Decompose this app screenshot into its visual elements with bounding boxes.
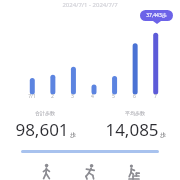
button[interactable]: 37,443歩 — [140, 10, 173, 24]
staticText: 3 — [71, 93, 74, 100]
staticText: 4 — [91, 93, 94, 100]
button[interactable]: Running — [77, 159, 103, 180]
staticText: 98,601 — [15, 118, 69, 141]
button[interactable]: 7/1 — [0, 0, 180, 104]
staticText: 歩 — [70, 131, 76, 139]
button[interactable]: 2024/7/1 - 2024/7/7 — [0, 1, 180, 9]
button[interactable]: Walking — [34, 159, 60, 180]
button[interactable]: 平均歩数 — [90, 110, 180, 141]
staticText: 2 — [51, 93, 54, 100]
staticText: 7 — [154, 93, 157, 100]
staticText: 2024/7/1 - 2024/7/7 — [62, 1, 118, 9]
staticText: 6 — [133, 93, 136, 100]
button[interactable]: 合計歩数 — [0, 110, 90, 141]
staticText: 14,085 — [105, 118, 159, 141]
staticText: 5 — [112, 93, 115, 100]
staticText: 37,443歩 — [146, 12, 167, 19]
staticText: 歩 — [160, 131, 166, 139]
staticText: 7/1 — [28, 93, 36, 100]
staticText: 合計歩数 — [35, 110, 55, 116]
button[interactable]: Stairs — [121, 159, 147, 180]
staticText: 平均歩数 — [125, 110, 145, 116]
